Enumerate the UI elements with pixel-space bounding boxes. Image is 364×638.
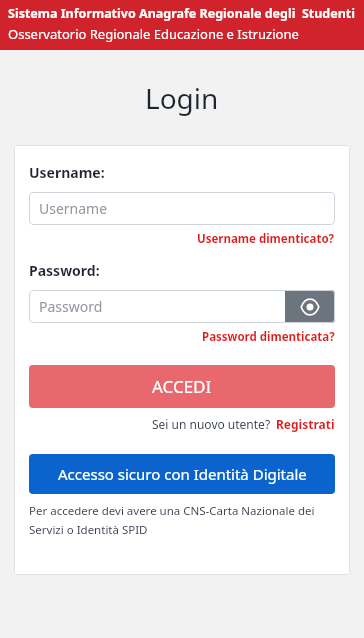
button[interactable]: Mostra password (285, 290, 335, 323)
staticText: ACCEDI (152, 375, 212, 398)
button[interactable]: Accesso sicuro con Identità Digitale (29, 454, 335, 494)
staticText: Login (145, 79, 219, 117)
button[interactable]: Username (29, 192, 335, 225)
button[interactable]: Password dimenticata? (202, 329, 335, 345)
staticText: Per accedere devi avere una CNS-Carta Na… (29, 503, 335, 537)
button[interactable]: ACCEDI (29, 365, 335, 408)
staticText: Password (39, 297, 103, 316)
button[interactable]: Username dimenticato? (197, 231, 335, 247)
staticText: Accesso sicuro con Identità Digitale (58, 464, 307, 484)
staticText: Username: (29, 163, 105, 182)
staticText: Sei un nuovo utente? (152, 416, 271, 432)
staticText: Password: (29, 261, 100, 280)
staticText: Username (39, 199, 108, 218)
button[interactable]: Password (29, 290, 285, 323)
staticText: Osservatorio Regionale Educazione e Istr… (8, 25, 299, 43)
staticText: Sistema Informativo Anagrafe Regionale d… (8, 5, 355, 22)
button[interactable]: Registrati (276, 416, 335, 432)
